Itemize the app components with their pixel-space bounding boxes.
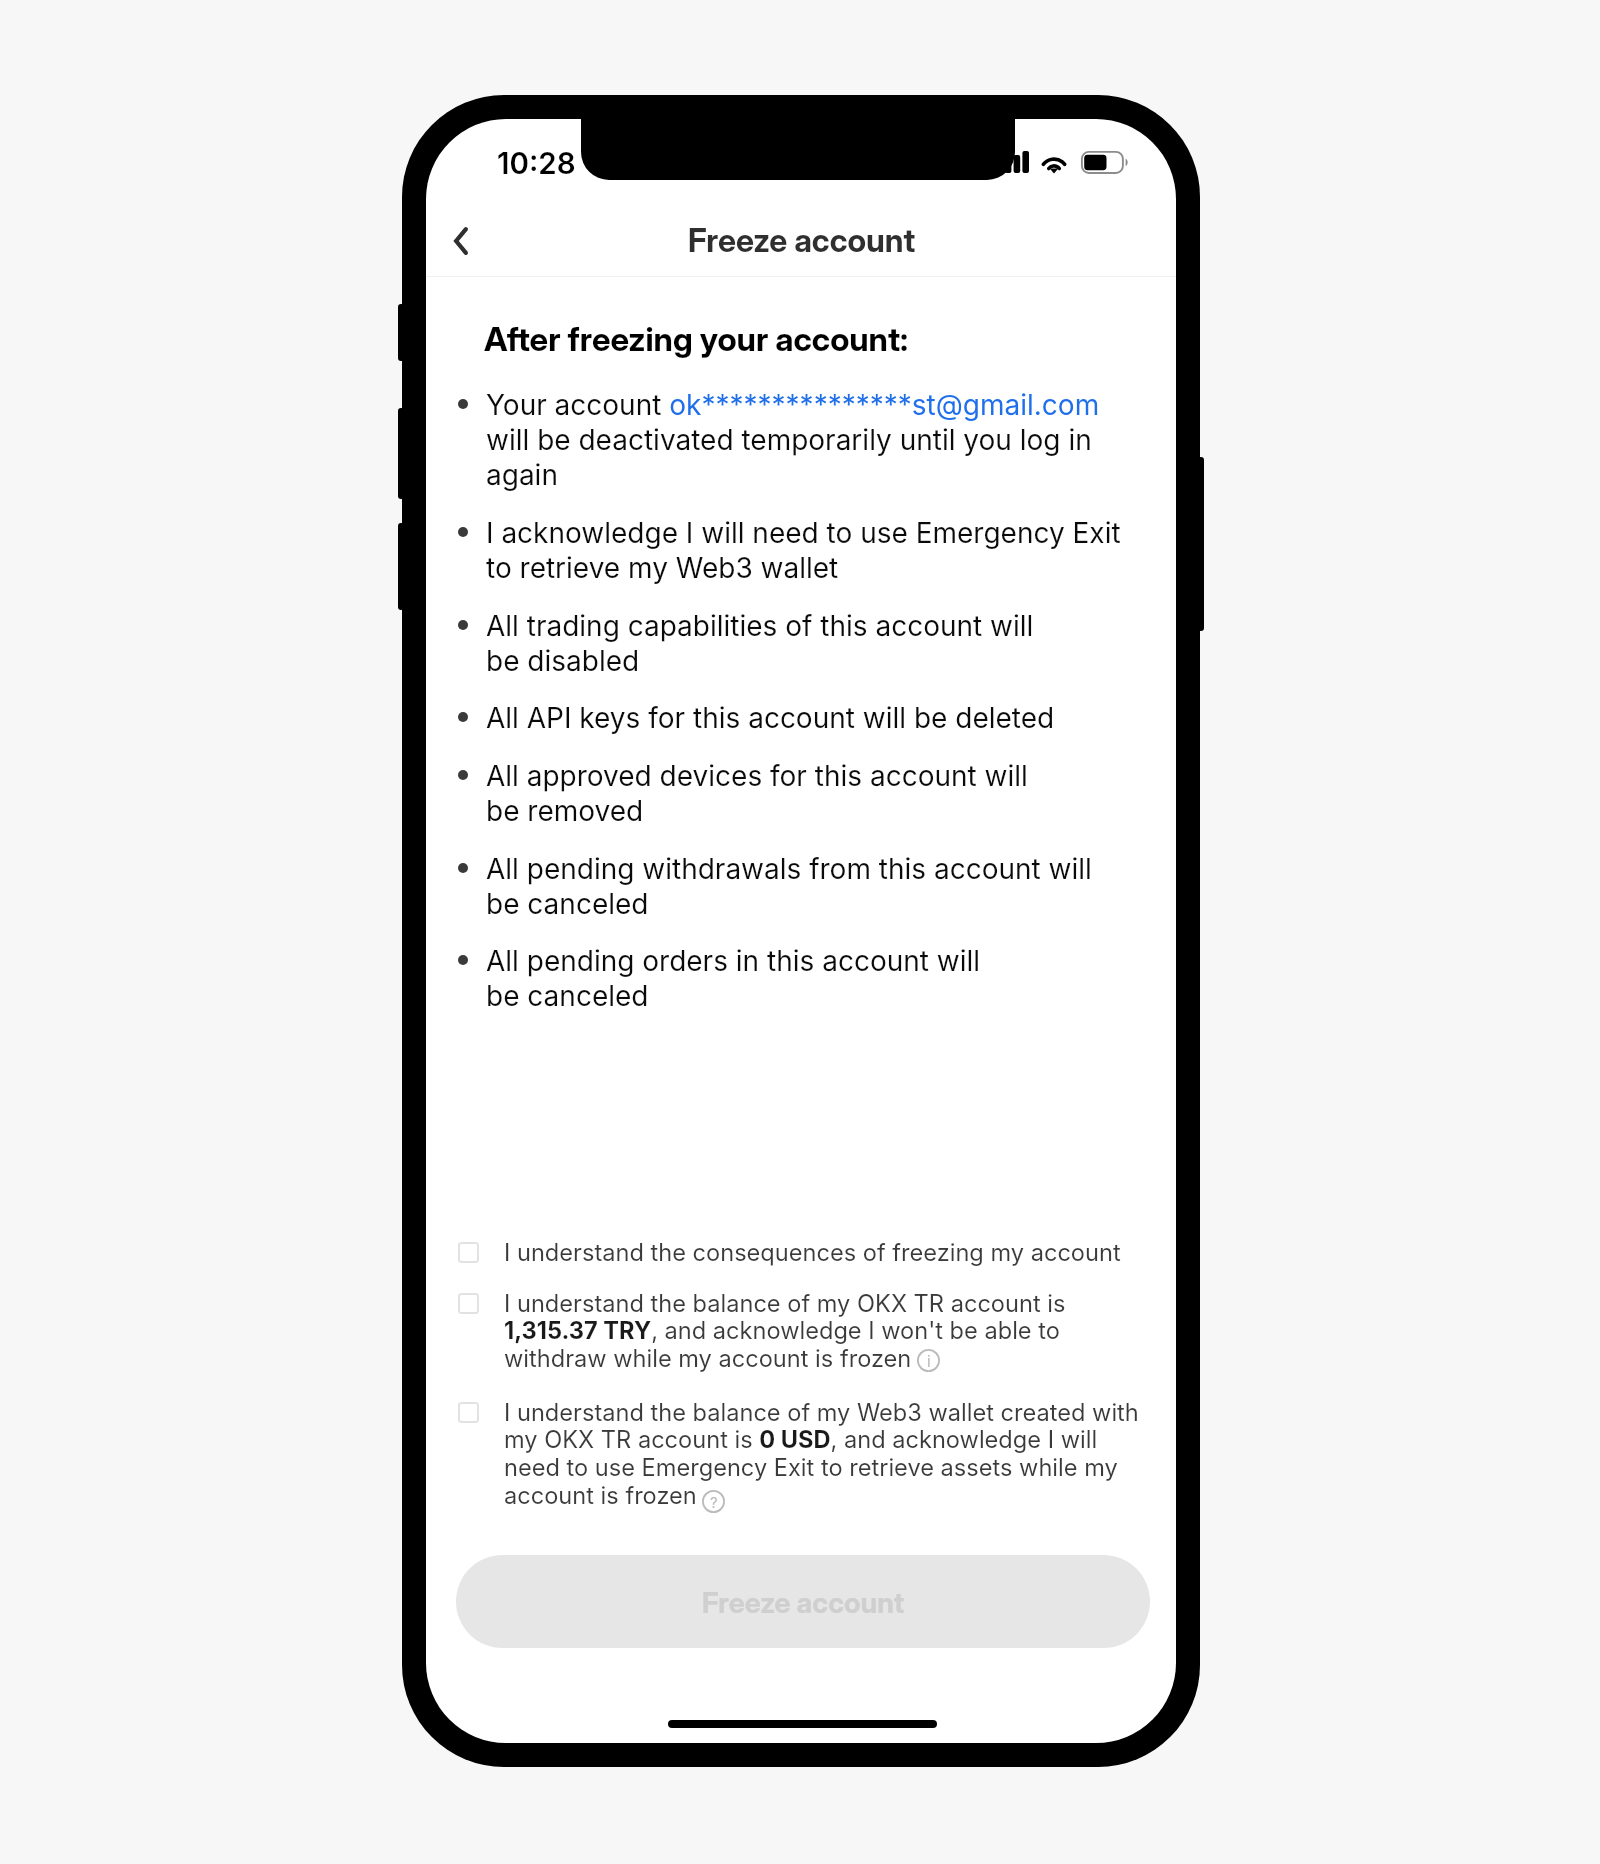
staticText: All API keys for this account will be de…	[486, 701, 1055, 735]
staticText: i	[927, 1352, 931, 1370]
staticText: All pending orders in this account will …	[486, 944, 981, 1013]
staticText: All approved devices for this account wi…	[486, 759, 1028, 828]
staticText: After freezing your account:	[484, 319, 909, 359]
button[interactable]: I understand the balance of my OKX TR ac…	[450, 1289, 1150, 1381]
staticText: I understand the balance of my Web3 wall…	[504, 1398, 1139, 1510]
staticText: Your account ok***************st@gmail.c…	[486, 388, 1100, 492]
staticText: All pending withdrawals from this accoun…	[486, 852, 1092, 921]
button[interactable]: I understand the consequences of freezin…	[450, 1238, 1150, 1274]
staticText: I understand the balance of my OKX TR ac…	[504, 1289, 1066, 1373]
staticText: Freeze account	[702, 1585, 905, 1619]
button[interactable]: Freeze account	[456, 1555, 1150, 1648]
staticText: ?	[710, 1493, 718, 1511]
staticText: 10:28	[497, 145, 576, 181]
staticText: I understand the consequences of freezin…	[504, 1238, 1121, 1267]
staticText: All trading capabilities of this account…	[486, 609, 1034, 678]
staticText: Freeze account	[688, 221, 916, 260]
button[interactable]: I understand the balance of my Web3 wall…	[450, 1398, 1150, 1518]
staticText: I acknowledge I will need to use Emergen…	[486, 516, 1121, 585]
button[interactable]: Back	[428, 208, 494, 274]
